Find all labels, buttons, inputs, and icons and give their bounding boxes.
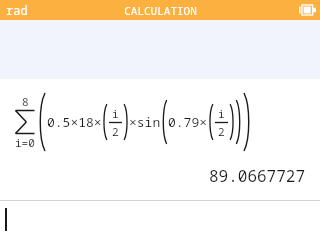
button[interactable]: rad xyxy=(0,0,320,20)
staticText: i xyxy=(218,106,225,121)
staticText: CALCULATION xyxy=(124,3,197,18)
button[interactable] xyxy=(0,201,320,240)
staticText: 8 xyxy=(22,94,29,109)
staticText: rad xyxy=(6,2,28,18)
button[interactable]: 8 xyxy=(14,93,252,151)
staticText: 2 xyxy=(218,124,225,139)
staticText: 89.0667727 xyxy=(209,165,306,187)
staticText: ×sin xyxy=(129,113,161,131)
staticText: 0.5×18× xyxy=(47,113,102,131)
staticText: i=0 xyxy=(15,135,35,150)
staticText: 2 xyxy=(112,124,119,139)
staticText: 0.79× xyxy=(168,113,208,131)
other: Battery xyxy=(299,5,316,15)
staticText: i xyxy=(112,106,119,121)
